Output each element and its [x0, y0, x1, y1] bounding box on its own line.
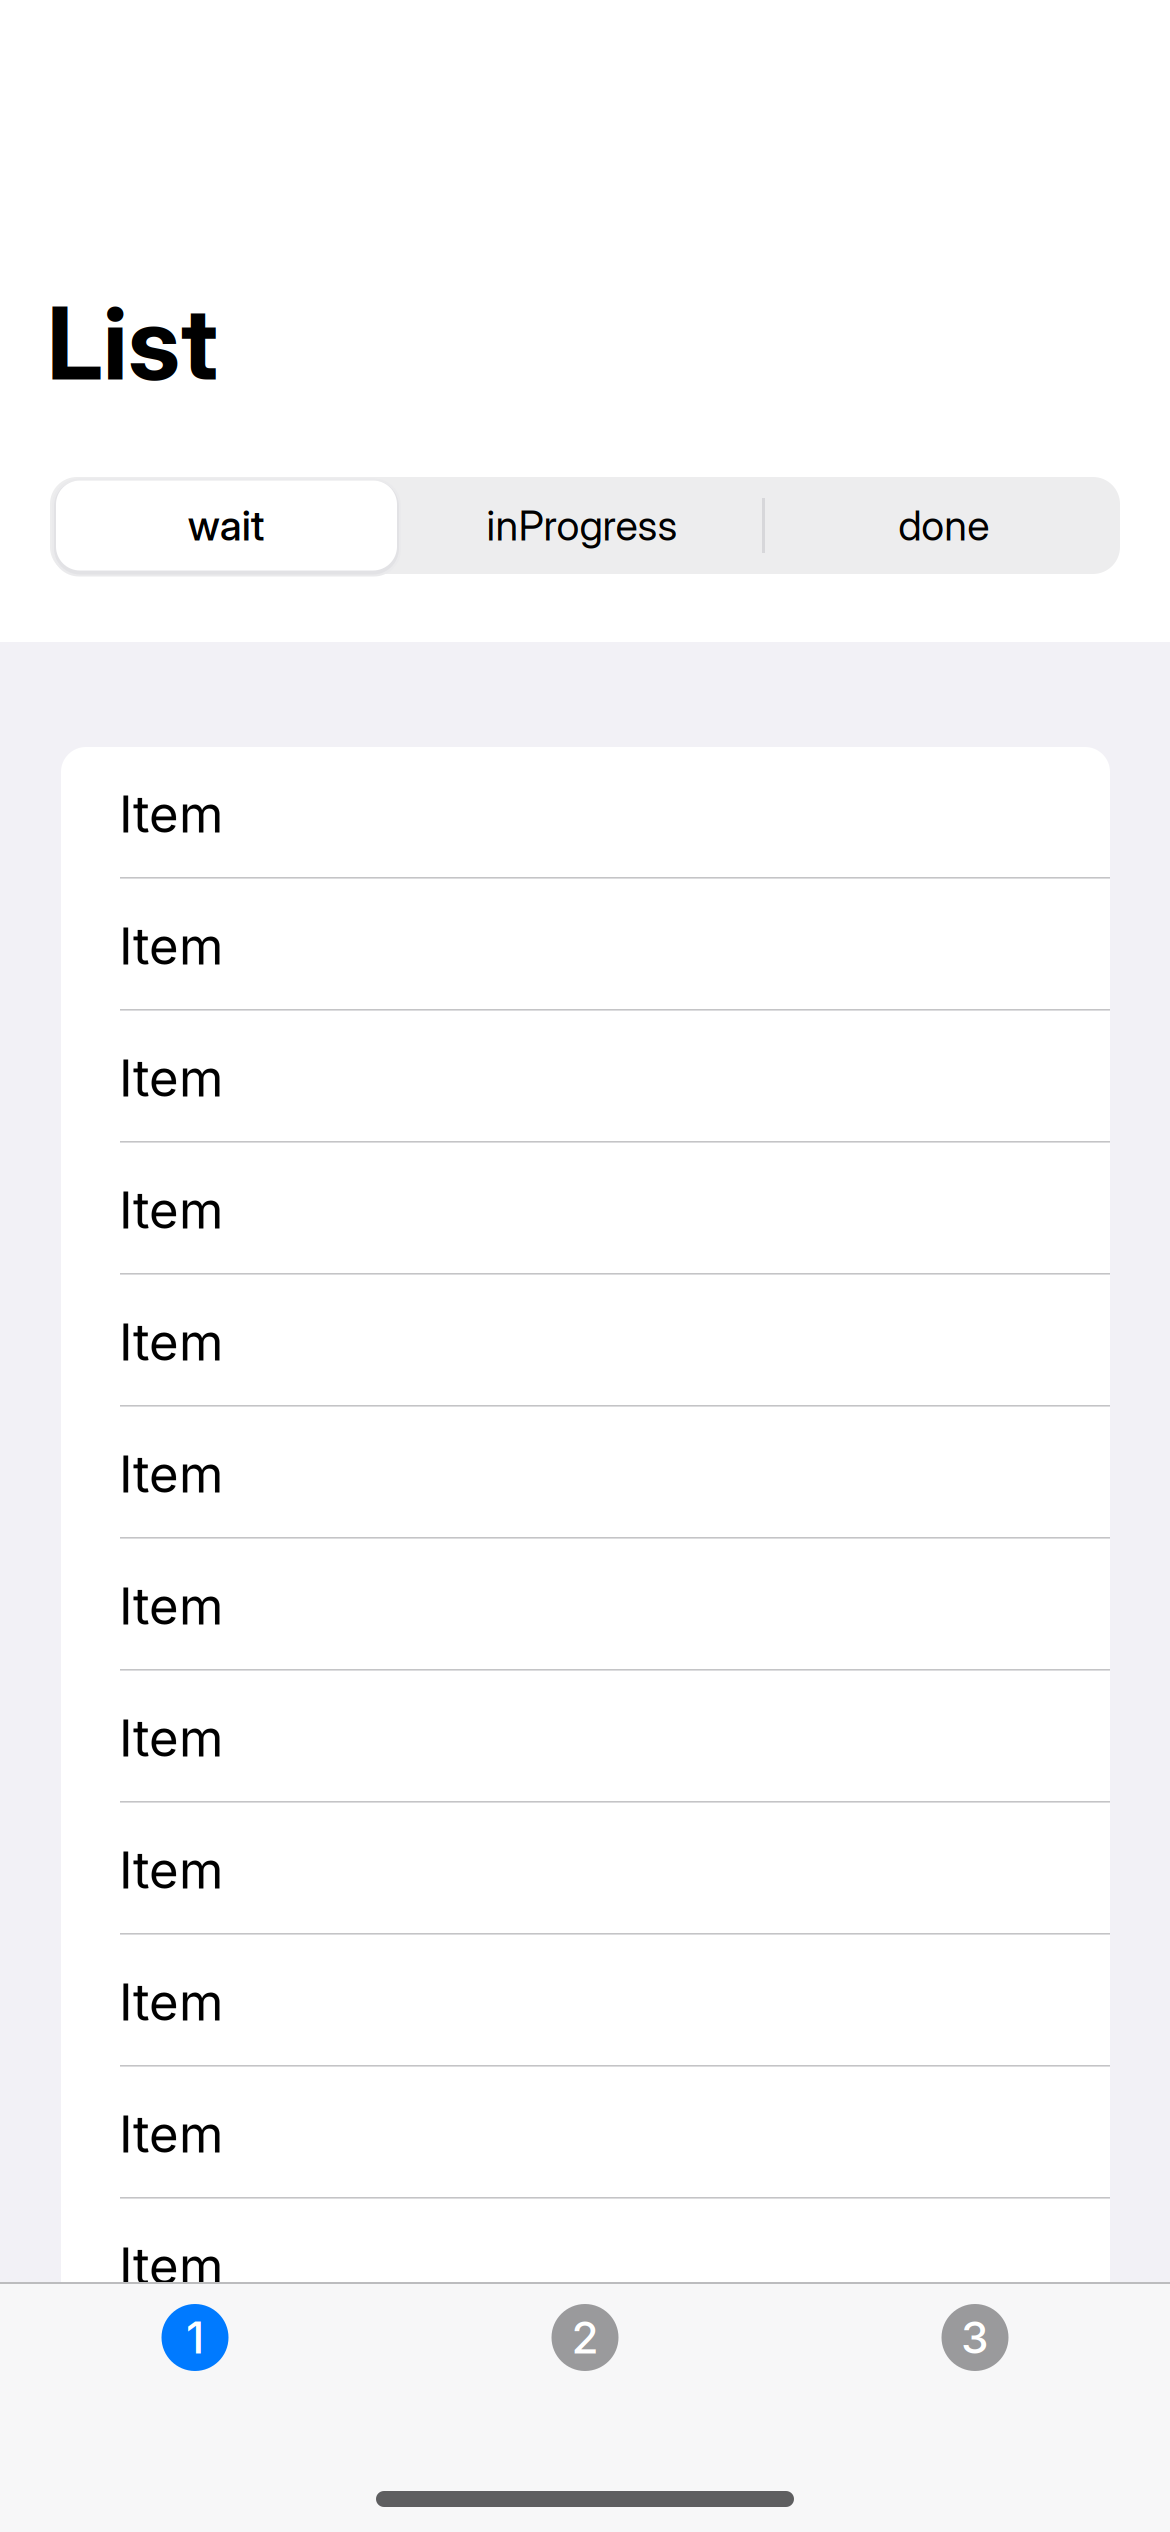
staticText: Item	[119, 2103, 223, 2165]
button[interactable]: Item	[61, 1539, 1110, 1671]
button[interactable]: Item	[61, 1671, 1110, 1803]
button[interactable]: Item	[61, 2067, 1110, 2199]
staticText: 1	[186, 2311, 204, 2364]
staticText: Item	[119, 1311, 223, 1373]
staticText: Item	[119, 1839, 223, 1901]
staticText: Item	[119, 2235, 223, 2297]
staticText: Item	[119, 1179, 223, 1241]
button[interactable]: inProgress	[407, 477, 763, 574]
staticText: Item	[119, 783, 223, 845]
button[interactable]: done	[763, 477, 1120, 574]
staticText: Item	[119, 1971, 223, 2033]
button[interactable]: Tab 3	[780, 2284, 1170, 2532]
staticText: done	[898, 500, 989, 550]
staticText: Item	[119, 915, 223, 977]
staticText: Item	[119, 1443, 223, 1505]
staticText: wait	[188, 500, 265, 550]
staticText: 3	[961, 2311, 989, 2364]
staticText: Item	[119, 1575, 223, 1637]
button[interactable]: Item	[61, 1011, 1110, 1143]
staticText: inProgress	[486, 500, 677, 550]
button[interactable]: Item	[61, 1935, 1110, 2067]
button[interactable]: Item	[61, 879, 1110, 1011]
staticText: 2	[571, 2311, 598, 2364]
staticText: Item	[119, 1047, 223, 1109]
button[interactable]: Tab 1	[0, 2284, 390, 2532]
button[interactable]: Item	[61, 2331, 1110, 2463]
button[interactable]: Item	[61, 2199, 1110, 2331]
staticText: Item	[119, 2368, 223, 2430]
button[interactable]: Item	[61, 1407, 1110, 1539]
button[interactable]: Item	[61, 1275, 1110, 1407]
button[interactable]: wait	[50, 477, 407, 574]
staticText: Item	[119, 1707, 223, 1769]
button[interactable]: Tab 2	[390, 2284, 780, 2532]
button[interactable]: Item	[61, 1803, 1110, 1935]
button[interactable]: Item	[61, 747, 1110, 879]
button[interactable]: Item	[61, 1143, 1110, 1275]
staticText: List	[47, 282, 218, 403]
